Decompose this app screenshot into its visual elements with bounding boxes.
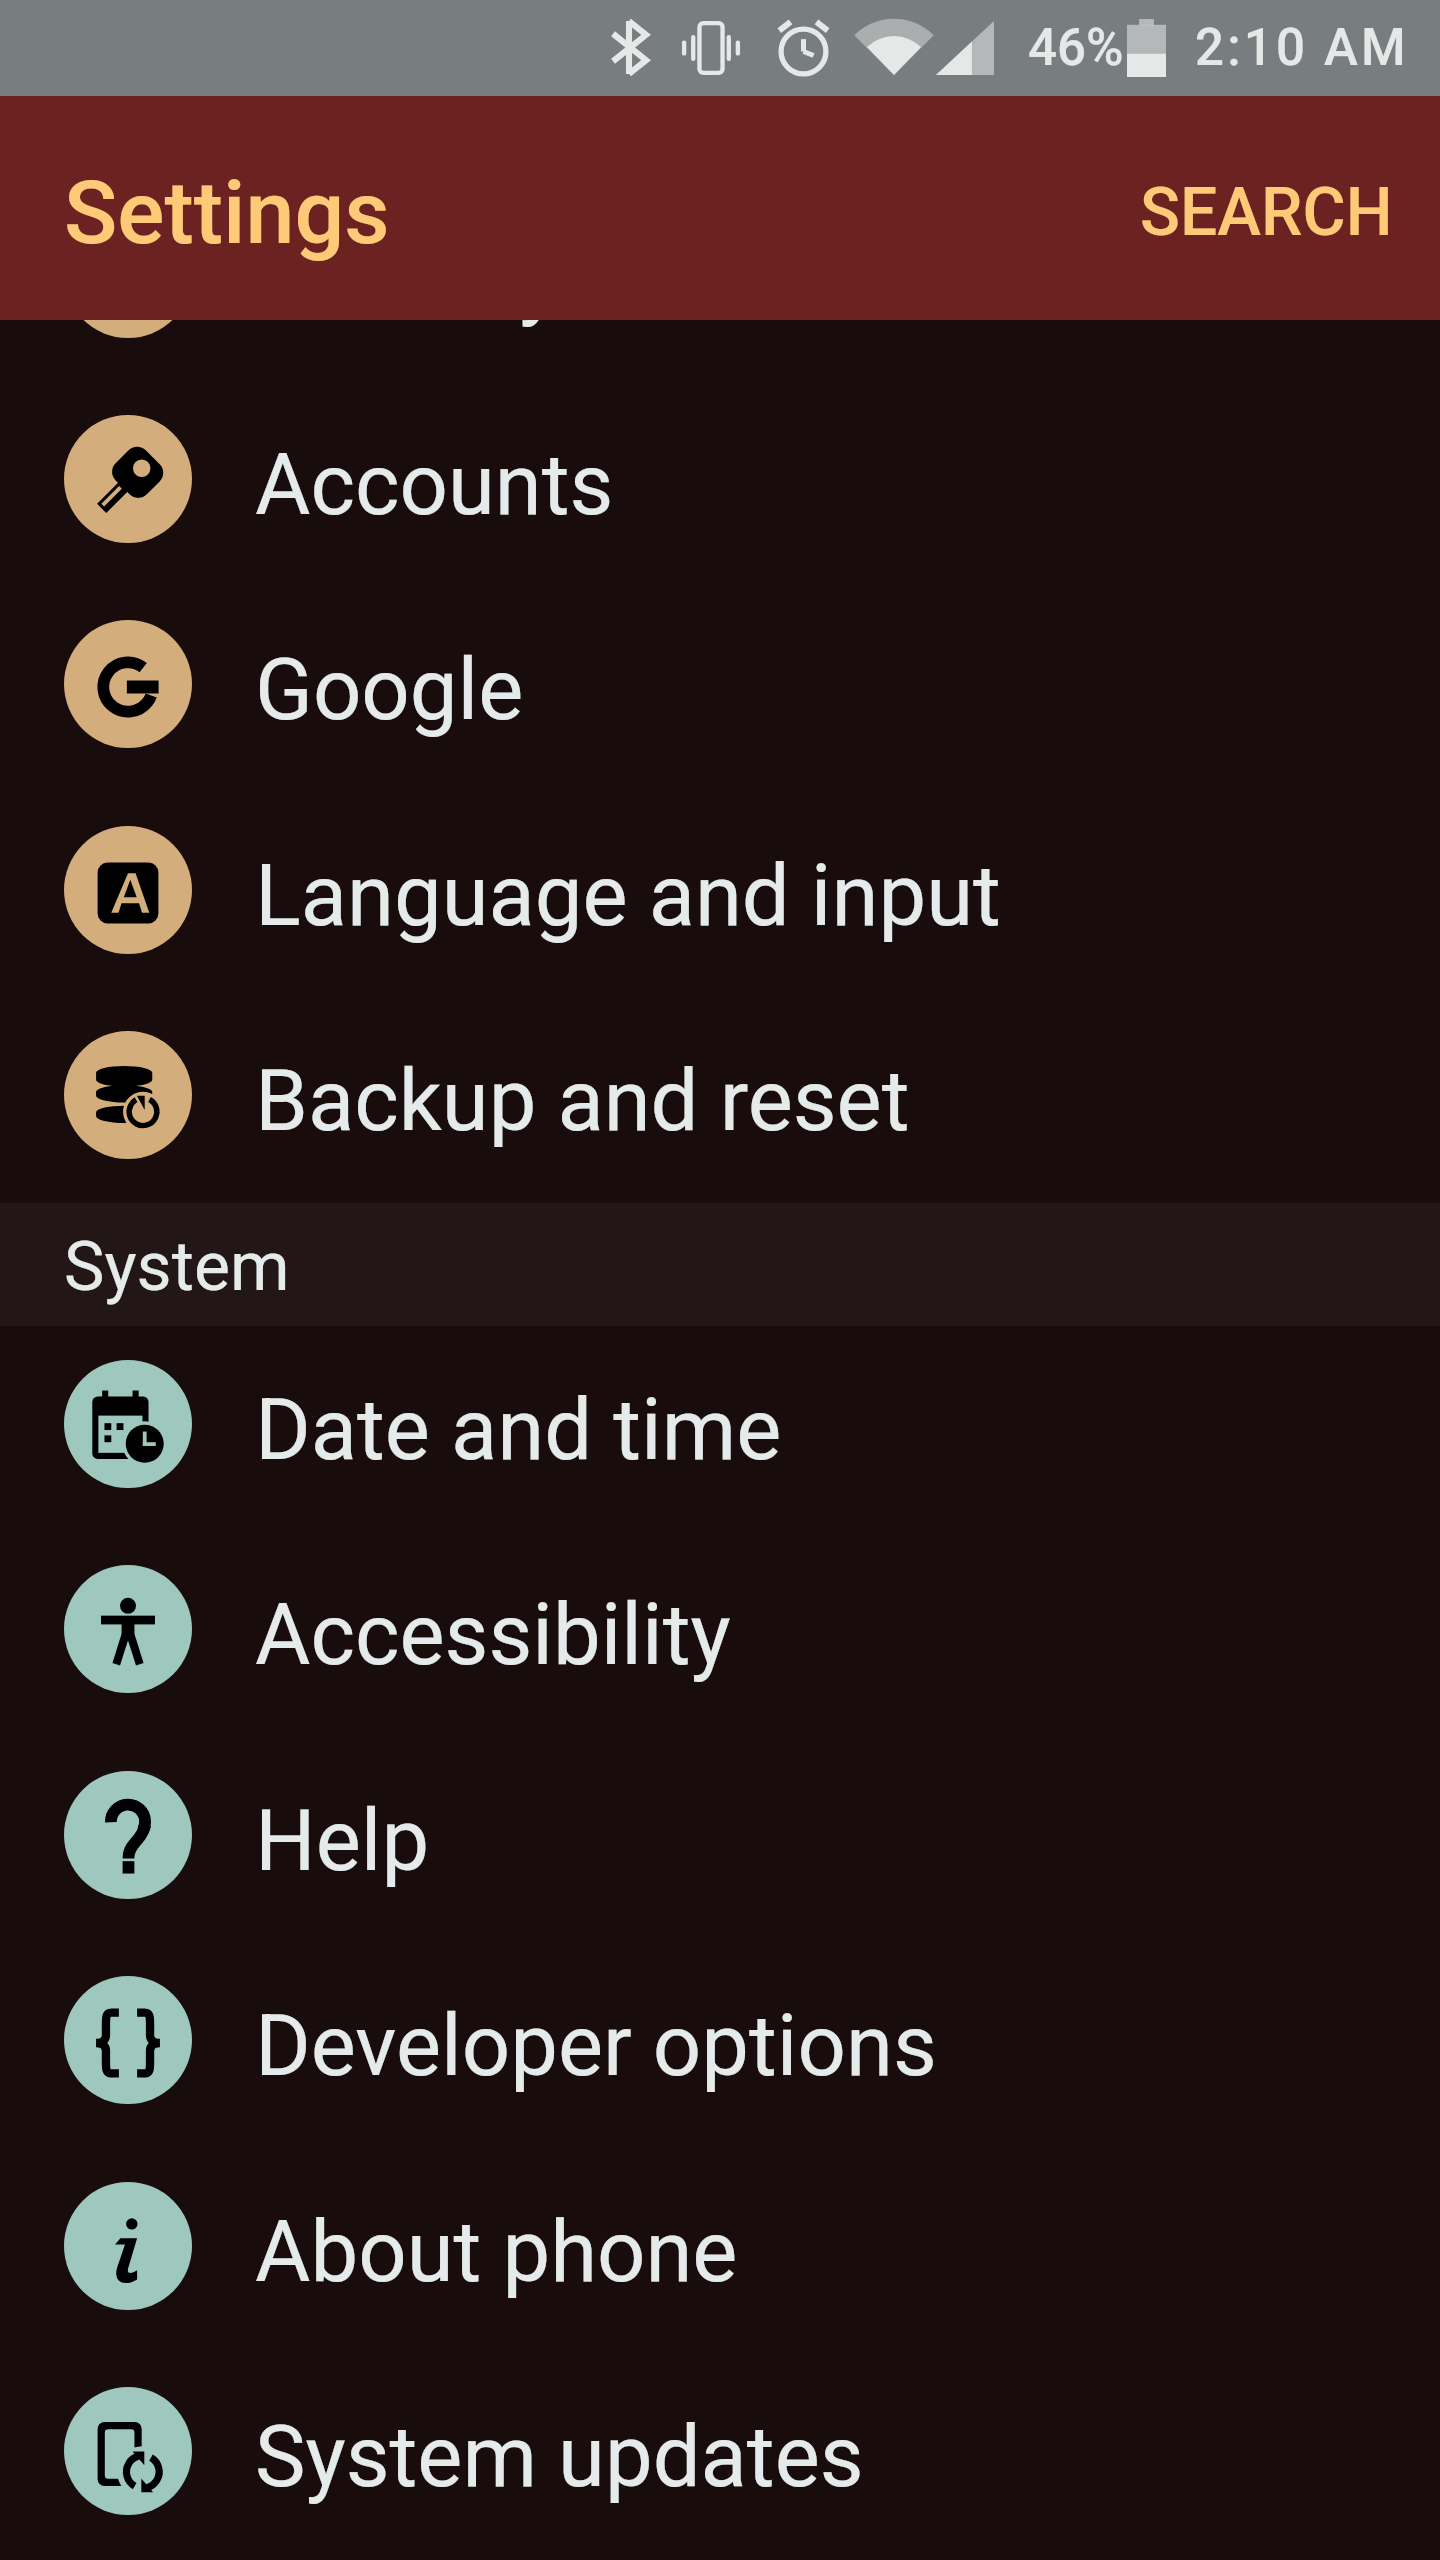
button[interactable]: System updates <box>0 2348 1440 2553</box>
staticText: SEARCH <box>1140 174 1393 251</box>
staticText: Google <box>255 640 524 740</box>
button[interactable]: Security <box>0 171 1440 376</box>
staticText: Date and time <box>255 1380 782 1480</box>
other: Battery 46 percent <box>1127 19 1166 77</box>
staticText: Settings <box>64 161 390 264</box>
staticText: System <box>64 1227 290 1307</box>
button[interactable]: Developer options <box>0 1937 1440 2142</box>
staticText: 46% <box>1028 18 1124 78</box>
other: Vibrate <box>676 21 746 75</box>
other: Alarm set <box>774 19 833 77</box>
staticText: About phone <box>255 2202 738 2302</box>
other: Wi-Fi <box>858 21 930 75</box>
button[interactable]: Language and input <box>0 787 1440 992</box>
other: Mobile signal <box>936 21 994 75</box>
staticText: Security <box>255 230 560 330</box>
button[interactable]: About phone <box>0 2143 1440 2348</box>
other: Bluetooth <box>610 20 648 75</box>
staticText: Backup and reset <box>255 1051 910 1151</box>
staticText: Accessibility <box>255 1585 731 1685</box>
button[interactable]: Backup and reset <box>0 992 1440 1197</box>
staticText: Language and input <box>255 846 1001 946</box>
button[interactable]: Google <box>0 581 1440 786</box>
button[interactable]: Help <box>0 1732 1440 1937</box>
staticText: 2:10 AM <box>1195 18 1409 78</box>
button[interactable]: Accessibility <box>0 1526 1440 1731</box>
staticText: System updates <box>255 2407 864 2507</box>
button[interactable]: SEARCH <box>1088 130 1440 287</box>
button[interactable]: Date and time <box>0 1321 1440 1526</box>
staticText: Developer options <box>255 1996 937 2096</box>
staticText: Accounts <box>255 435 614 535</box>
staticText: Help <box>255 1791 430 1891</box>
button[interactable]: Accounts <box>0 376 1440 581</box>
